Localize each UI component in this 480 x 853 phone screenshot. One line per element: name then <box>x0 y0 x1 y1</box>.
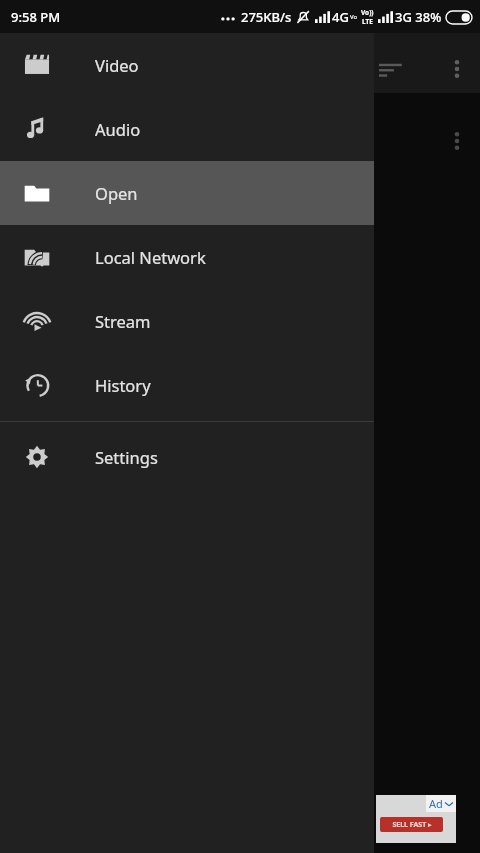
button[interactable]: Audio <box>0 97 374 161</box>
staticText: Ad <box>429 796 443 811</box>
staticText: 4G <box>332 8 349 26</box>
staticText: Vo)) <box>361 8 374 17</box>
staticText: 9:58 PM <box>11 8 61 26</box>
button[interactable]: History <box>0 353 374 417</box>
staticText: Vo <box>350 13 358 21</box>
button[interactable]: More options <box>434 46 480 92</box>
staticText: 275KB/s <box>241 8 292 26</box>
button[interactable]: Ad <box>376 795 456 843</box>
staticText: LTE <box>362 17 373 26</box>
button[interactable]: SELL FAST ▸ <box>380 817 443 832</box>
staticText: Local Network <box>95 246 206 268</box>
staticText: 3G 38% <box>395 8 442 26</box>
staticText: Open <box>95 182 138 204</box>
button[interactable]: Local Network <box>0 225 374 289</box>
button[interactable]: Stream <box>0 289 374 353</box>
staticText: Audio <box>95 118 141 140</box>
staticText: Settings <box>95 446 158 468</box>
staticText: SELL FAST ▸ <box>392 820 432 830</box>
staticText: Stream <box>95 310 151 332</box>
staticText: Video <box>95 54 139 76</box>
button[interactable]: Video <box>0 33 374 97</box>
button[interactable]: Open <box>0 161 374 225</box>
button[interactable]: Settings <box>0 425 374 489</box>
button[interactable]: More options <box>434 118 480 164</box>
staticText: History <box>95 374 151 396</box>
button[interactable]: Sort <box>368 48 412 92</box>
